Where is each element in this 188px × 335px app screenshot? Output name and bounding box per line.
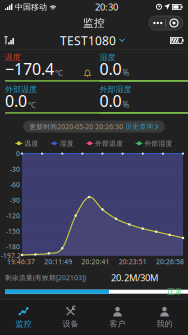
staticText: 历史查询 (125, 122, 153, 131)
staticText: 外部湿度 (143, 139, 173, 148)
staticText: -150 (6, 227, 20, 236)
button[interactable]: 设备 (47, 300, 94, 335)
staticText: 0.0 (99, 58, 121, 79)
staticText: 19:46:37 (7, 257, 35, 266)
staticText: 湿度 (99, 52, 115, 62)
staticText: -60 (10, 180, 20, 189)
button[interactable]: 湿度 (96, 50, 186, 82)
button[interactable]: 更多 (149, 16, 183, 30)
staticText: 正常 (167, 287, 183, 297)
staticText: -90 (10, 196, 20, 205)
staticText: 20:23:51 (119, 257, 147, 266)
staticText: 中国移动 (13, 2, 49, 12)
staticText: ℃ (28, 99, 36, 110)
staticText: TEST1080 (60, 32, 116, 48)
staticText: -180 (6, 242, 20, 251)
staticText: % (122, 67, 129, 78)
button[interactable]: 更新时间2020-05-20 20:26:30 (23, 121, 165, 133)
staticText: 外部湿度 (99, 84, 131, 94)
staticText: % (122, 99, 129, 110)
staticText: 20:26:58 (156, 257, 184, 266)
staticText: 客户 (109, 319, 125, 329)
staticText: 温度 (22, 139, 38, 148)
staticText: 我的 (156, 319, 172, 329)
button[interactable]: 外部温度 (2, 82, 91, 114)
staticText: -30 (10, 165, 20, 174)
button[interactable]: 监控 (0, 300, 47, 335)
button[interactable]: 客户 (94, 300, 141, 335)
staticText: 外部温度 (93, 139, 123, 148)
button[interactable]: 温度 (2, 50, 91, 82)
staticText: 20.2M/30M (111, 271, 158, 284)
staticText: 0 (16, 149, 20, 158)
staticText: 温度 (5, 52, 21, 62)
staticText: −170.4 (5, 58, 54, 79)
button[interactable]: TEST1080 (0, 32, 188, 49)
staticText: -120 (6, 211, 20, 220)
staticText: 剩余流量(有效期[202103]) (5, 273, 86, 282)
staticText: -197.2 (1, 251, 21, 260)
button[interactable]: 我的 (141, 300, 188, 335)
staticText: 0.0 (99, 90, 121, 111)
staticText: ℃ (55, 67, 63, 78)
staticText: 湿度 (58, 139, 74, 148)
staticText: 设备 (62, 319, 78, 329)
staticText: 外部温度 (5, 84, 37, 94)
staticText: 监控 (83, 16, 105, 29)
staticText: 监控 (15, 319, 31, 329)
staticText: 0.0 (5, 90, 27, 111)
staticText: 更新时间2020-05-20 20:26:30 (29, 122, 125, 131)
staticText: 20:11:49 (44, 257, 72, 266)
staticText: 20:20:41 (81, 257, 109, 266)
button[interactable]: 外部湿度 (96, 82, 186, 114)
staticText: 20:30 (95, 1, 118, 13)
